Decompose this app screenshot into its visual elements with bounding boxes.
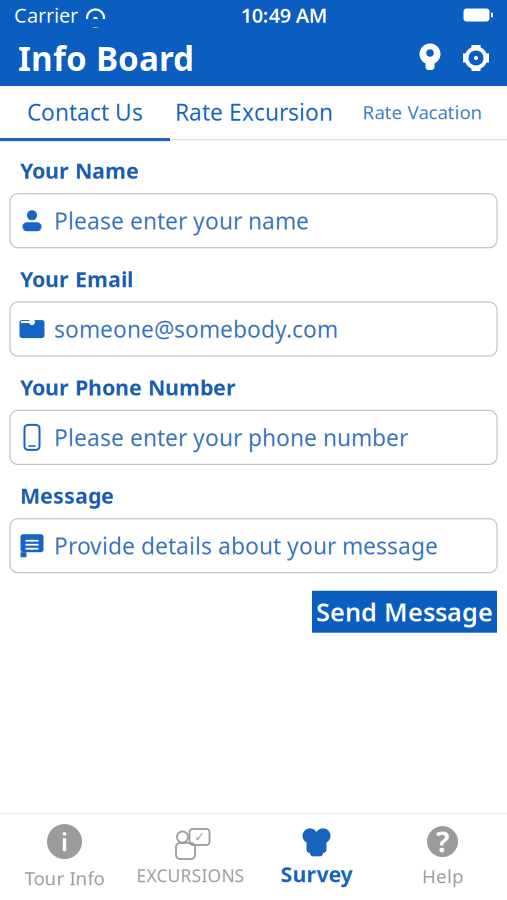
- button[interactable]: Settings: [453, 35, 499, 81]
- staticText: 10:49 AM: [241, 2, 328, 28]
- staticText: Help: [422, 864, 463, 888]
- button[interactable]: ✓: [127, 814, 253, 900]
- button[interactable]: Please enter your phone number: [10, 410, 497, 464]
- button[interactable]: Send Message: [312, 591, 497, 633]
- staticText: Please enter your name: [54, 206, 309, 236]
- staticText: Provide details about your message: [54, 531, 438, 561]
- staticText: ?: [436, 823, 449, 860]
- staticText: EXCURSIONS: [136, 864, 244, 887]
- button[interactable]: Tour Info: [1, 814, 127, 900]
- staticText: Survey: [280, 860, 352, 888]
- staticText: Message: [20, 481, 114, 510]
- staticText: someone@somebody.com: [54, 314, 338, 344]
- staticText: Your Name: [20, 156, 139, 185]
- staticText: Rate Excursion: [175, 97, 333, 127]
- button[interactable]: Location: [407, 35, 453, 81]
- staticText: Rate Vacation: [362, 100, 482, 124]
- staticText: Contact Us: [27, 97, 143, 127]
- staticText: Please enter your phone number: [54, 422, 408, 452]
- staticText: Send Message: [316, 595, 493, 628]
- button[interactable]: Provide details about your message: [10, 519, 497, 573]
- button[interactable]: ?: [379, 814, 505, 900]
- button[interactable]: someone@somebody.com: [10, 302, 497, 356]
- button[interactable]: Survey: [253, 814, 379, 900]
- staticText: ✓: [194, 829, 205, 844]
- staticText: Carrier: [14, 2, 78, 28]
- staticText: Your Email: [20, 265, 133, 293]
- staticText: Your Phone Number: [20, 373, 236, 401]
- button[interactable]: Rate Excursion: [170, 86, 338, 138]
- button[interactable]: Contact Us: [0, 86, 170, 138]
- staticText: Info Board: [18, 36, 194, 80]
- button[interactable]: Rate Vacation: [338, 86, 507, 138]
- staticText: Tour Info: [24, 866, 104, 890]
- button[interactable]: Please enter your name: [10, 194, 497, 248]
